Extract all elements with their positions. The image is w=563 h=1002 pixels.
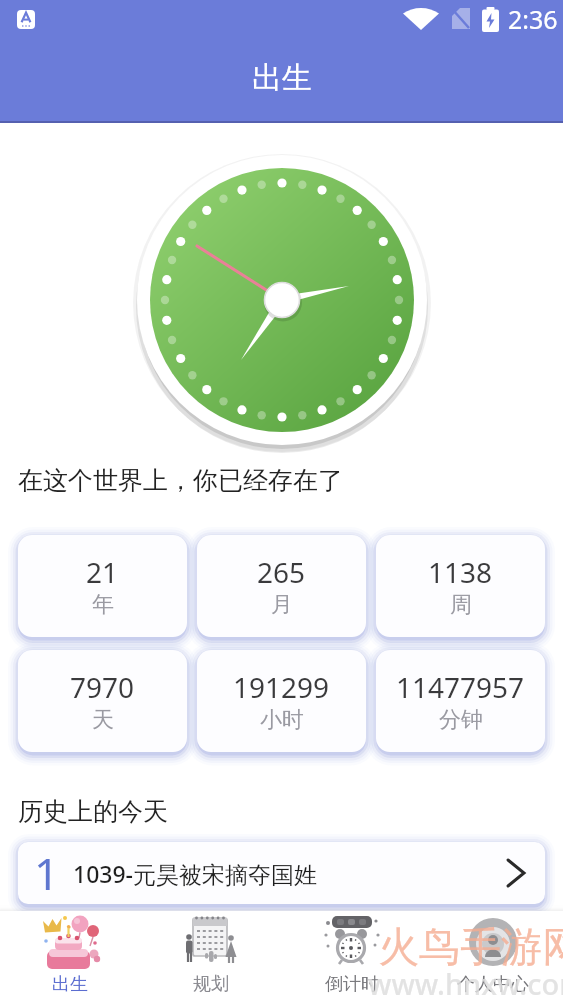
staticText: 规划 <box>193 973 229 996</box>
staticText: 分钟 <box>439 706 483 734</box>
staticText: 在这个世界上，你已经存在了 <box>18 465 343 496</box>
staticText: 1039-元昊被宋摘夺国姓 <box>73 858 318 889</box>
staticText: 历史上的今天 <box>18 796 168 827</box>
button[interactable]: 7970 <box>18 650 187 752</box>
staticText: 火鸟手游网 <box>378 922 563 974</box>
button[interactable]: 1138 <box>376 535 545 637</box>
staticText: 月 <box>271 591 293 619</box>
button[interactable]: 个人中心 <box>422 911 563 996</box>
staticText: 1138 <box>428 553 493 591</box>
staticText: 191299 <box>233 668 330 706</box>
button[interactable]: 1 <box>18 842 545 904</box>
staticText: 个人中心 <box>457 973 529 996</box>
button[interactable]: 11477957 <box>376 650 545 752</box>
button[interactable]: 规划 <box>140 911 281 996</box>
staticText: 7970 <box>70 668 135 706</box>
staticText: 1 <box>34 843 60 903</box>
staticText: 出生 <box>252 59 312 97</box>
staticText: 周 <box>450 591 472 619</box>
button[interactable]: 出生 <box>0 911 140 996</box>
button[interactable]: 191299 <box>197 650 366 752</box>
button[interactable]: 265 <box>197 535 366 637</box>
staticText: 倒计时 <box>325 973 379 996</box>
staticText: 小时 <box>260 706 304 734</box>
staticText: 21 <box>86 553 119 591</box>
staticText: 年 <box>92 591 114 619</box>
staticText: www.hnxw.com <box>368 964 563 1002</box>
button[interactable]: 倒计时 <box>281 911 422 996</box>
staticText: 天 <box>92 706 114 734</box>
staticText: 2:36 <box>508 2 558 36</box>
staticText: 出生 <box>52 973 88 996</box>
staticText: 265 <box>257 553 306 591</box>
button[interactable]: 21 <box>18 535 187 637</box>
staticText: 11477957 <box>396 668 525 706</box>
